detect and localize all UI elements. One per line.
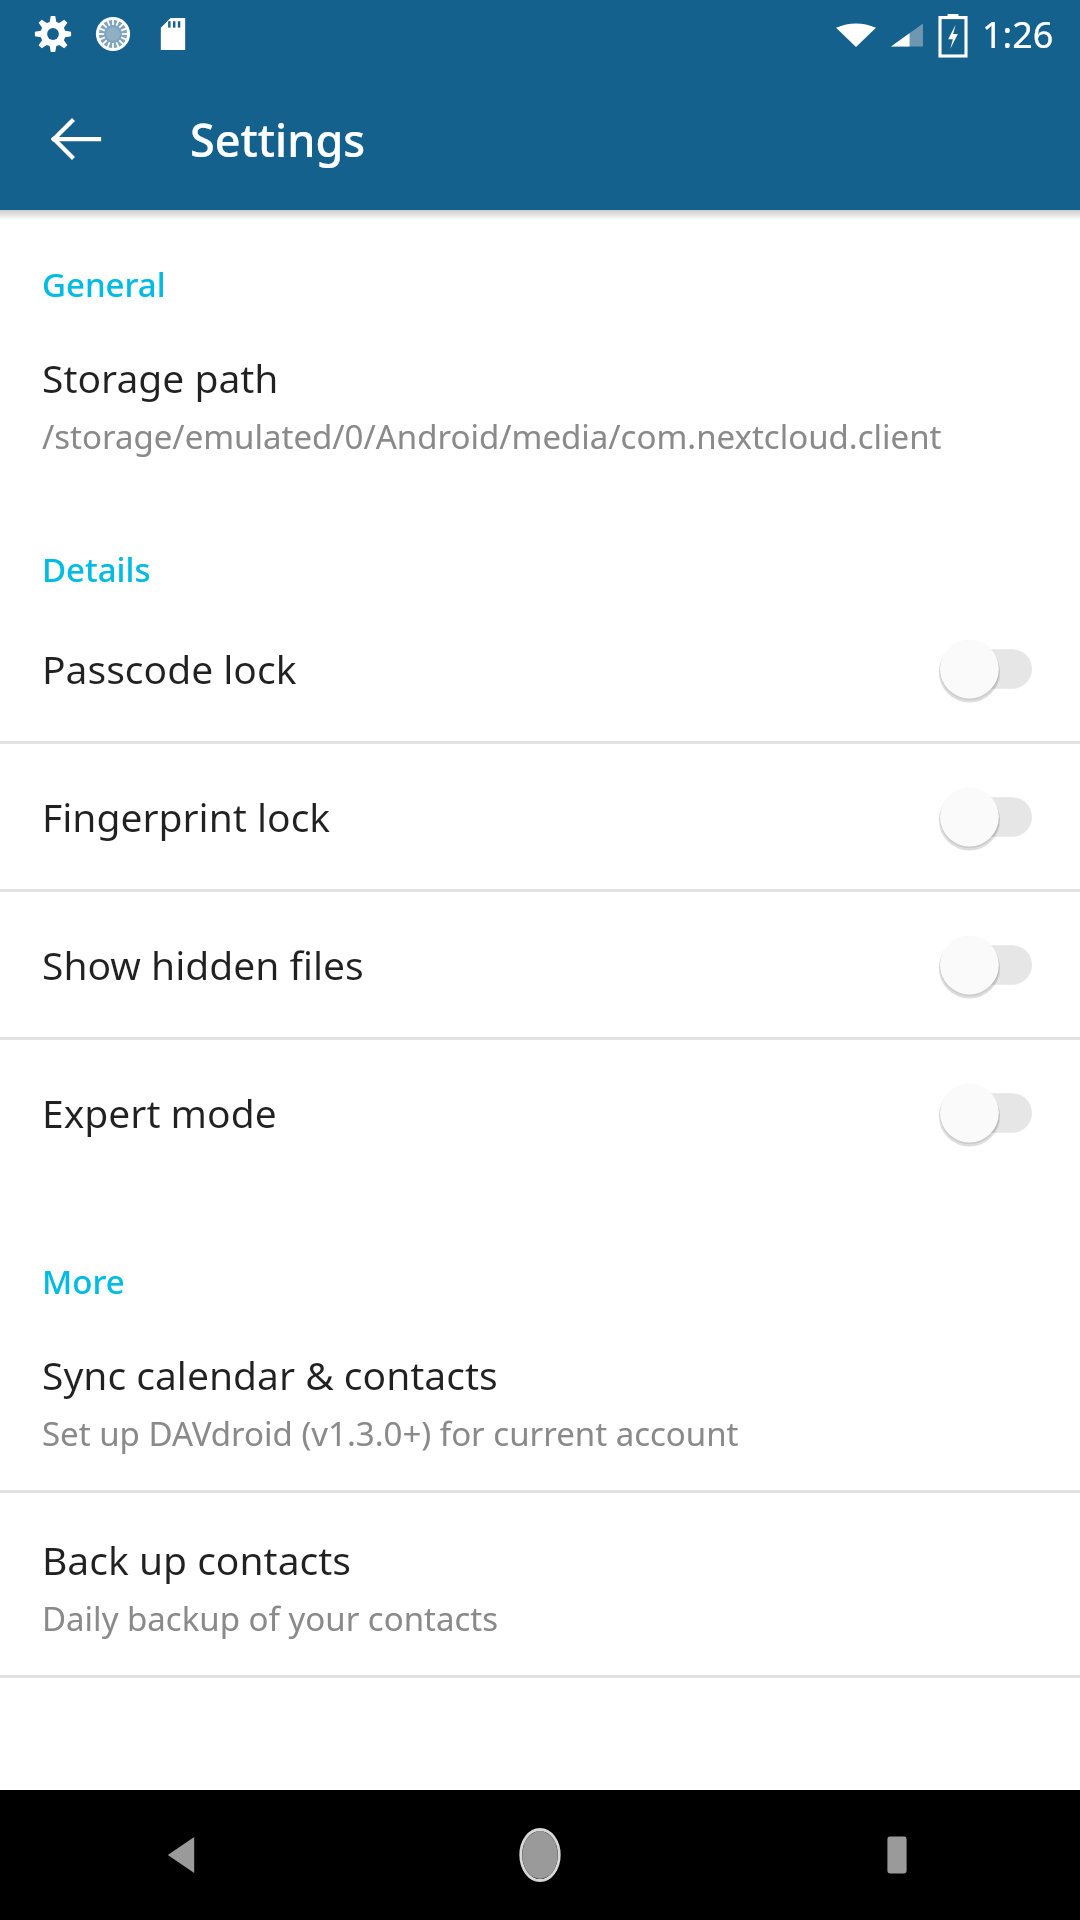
staticText: Daily backup of your contacts xyxy=(42,1596,499,1641)
button[interactable]: Expert mode xyxy=(0,1040,1080,1185)
button[interactable]: Toggle off xyxy=(938,785,1038,849)
staticText: Sync calendar & contacts xyxy=(42,1348,498,1401)
button[interactable]: Fingerprint lock xyxy=(0,744,1080,889)
button[interactable]: Sync calendar & contacts xyxy=(0,1308,1080,1490)
button[interactable]: Recent apps xyxy=(842,1800,952,1910)
button[interactable]: Home xyxy=(485,1800,595,1910)
button[interactable]: Show hidden files xyxy=(0,892,1080,1037)
staticText: Fingerprint lock xyxy=(42,790,938,843)
staticText: /storage/emulated/0/Android/media/com.ne… xyxy=(42,414,942,459)
button[interactable]: Back up contacts xyxy=(0,1493,1080,1675)
button[interactable]: Navigate up xyxy=(30,93,122,185)
staticText: General xyxy=(42,262,1080,307)
button[interactable]: Back xyxy=(128,1800,238,1910)
staticText: Back up contacts xyxy=(42,1533,351,1586)
staticText: Show hidden files xyxy=(42,938,938,991)
staticText: More xyxy=(42,1259,1080,1304)
button[interactable]: Toggle off xyxy=(938,1081,1038,1145)
staticText: Passcode lock xyxy=(42,642,938,695)
staticText: Storage path xyxy=(42,351,279,404)
button[interactable]: Toggle off xyxy=(938,637,1038,701)
button[interactable]: Passcode lock xyxy=(0,596,1080,741)
button[interactable]: Storage path xyxy=(0,311,1080,489)
staticText: Set up DAVdroid (v1.3.0+) for current ac… xyxy=(42,1411,739,1456)
staticText: Expert mode xyxy=(42,1086,938,1139)
staticText: Details xyxy=(42,547,1080,592)
staticText: Settings xyxy=(190,109,366,170)
staticText: 1:26 xyxy=(982,10,1054,59)
button[interactable]: Toggle off xyxy=(938,933,1038,997)
